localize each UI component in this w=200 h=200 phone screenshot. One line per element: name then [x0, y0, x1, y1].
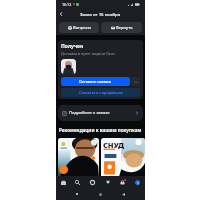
button[interactable]: Главная	[56, 176, 70, 188]
button[interactable]	[61, 59, 76, 74]
button[interactable]	[58, 138, 99, 178]
staticText: 16:12	[62, 2, 72, 7]
button[interactable]: Профиль	[130, 176, 145, 188]
staticText: Связаться с продавцом	[79, 90, 123, 95]
button[interactable]: Назад	[56, 9, 66, 19]
staticText: Получен	[61, 43, 84, 50]
button[interactable]: Поиск	[70, 176, 85, 188]
button[interactable]: Экспресс	[85, 176, 100, 188]
staticText: СНУД	[103, 140, 124, 150]
button[interactable]: Оставить чаевые	[61, 77, 130, 86]
button[interactable]: Корзина	[115, 176, 130, 188]
staticText: Заказ от 16 ноября	[80, 11, 121, 17]
button[interactable]: Избранное	[100, 176, 115, 188]
button[interactable]: Подробнее о заказе	[62, 105, 139, 121]
button[interactable]: Ещё	[131, 77, 140, 86]
staticText: Рекомендации к вашим покупкам	[59, 127, 142, 133]
staticText: Доставка в пункт выдачи Ozon	[61, 51, 115, 56]
staticText: Вернуть	[116, 25, 133, 31]
button[interactable]: Связаться с продавцом	[61, 88, 140, 97]
staticText: Подробнее о заказе	[69, 110, 110, 116]
staticText: Оставить чаевые	[79, 79, 112, 84]
button[interactable]: СНУД	[101, 138, 145, 178]
button[interactable]: Вернуть	[101, 22, 142, 33]
staticText: Вопросы	[73, 25, 91, 31]
button[interactable]: Вопросы	[59, 22, 99, 33]
